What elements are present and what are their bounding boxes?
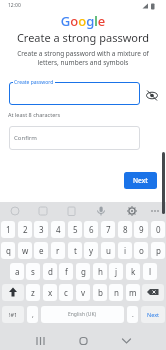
button[interactable]: 1 bbox=[1, 221, 15, 238]
staticText: b bbox=[98, 287, 103, 298]
staticText: Next bbox=[147, 311, 160, 318]
staticText: 4 bbox=[56, 224, 61, 235]
button[interactable]: o bbox=[134, 242, 148, 259]
button[interactable]: 7 bbox=[101, 221, 115, 238]
staticText: 0 bbox=[156, 224, 161, 235]
button[interactable]: r bbox=[51, 242, 65, 259]
button[interactable] bbox=[2, 284, 24, 301]
staticText: 3 bbox=[39, 224, 44, 235]
staticText: k bbox=[131, 266, 136, 277]
button[interactable]: 6 bbox=[84, 221, 98, 238]
button[interactable]: Next bbox=[124, 172, 157, 189]
button[interactable]: h bbox=[93, 263, 107, 280]
staticText: 7 bbox=[106, 224, 111, 235]
staticText: r bbox=[56, 245, 60, 256]
button[interactable]: e bbox=[34, 242, 48, 259]
staticText: o bbox=[139, 245, 144, 256]
button[interactable]: a bbox=[10, 263, 24, 280]
staticText: . bbox=[132, 310, 134, 319]
button[interactable]: s bbox=[26, 263, 40, 280]
button[interactable]: t bbox=[68, 242, 82, 259]
staticText: v bbox=[81, 287, 86, 298]
button[interactable]: w bbox=[18, 242, 32, 259]
staticText: m bbox=[129, 287, 137, 298]
button[interactable]: Next bbox=[141, 306, 165, 323]
staticText: English (UK) bbox=[68, 311, 97, 318]
staticText: g bbox=[81, 266, 86, 277]
button[interactable]: English (UK) bbox=[41, 306, 124, 323]
button[interactable]: q bbox=[1, 242, 15, 259]
staticText: , bbox=[32, 310, 34, 319]
button[interactable]: p bbox=[151, 242, 165, 259]
button[interactable]: 4 bbox=[51, 221, 65, 238]
button[interactable] bbox=[142, 284, 164, 301]
button[interactable]: , bbox=[27, 306, 38, 323]
staticText: 9 bbox=[139, 224, 144, 235]
staticText: !#1 bbox=[9, 311, 18, 318]
staticText: n bbox=[114, 287, 119, 298]
button[interactable]: x bbox=[43, 284, 57, 301]
button[interactable] bbox=[145, 89, 159, 102]
button[interactable]: f bbox=[59, 263, 73, 280]
button[interactable]: i bbox=[118, 242, 132, 259]
staticText: p bbox=[156, 245, 161, 256]
button[interactable]: j bbox=[109, 263, 123, 280]
staticText: 8 bbox=[123, 224, 128, 235]
staticText: q bbox=[6, 245, 11, 256]
staticText: 12:00 bbox=[8, 2, 21, 9]
button[interactable]: g bbox=[76, 263, 90, 280]
staticText: y bbox=[89, 245, 94, 256]
button[interactable]: Confirm bbox=[9, 126, 140, 150]
staticText: z bbox=[31, 287, 35, 298]
button[interactable]: k bbox=[126, 263, 140, 280]
button[interactable]: 3 bbox=[34, 221, 48, 238]
button[interactable]: b bbox=[93, 284, 107, 301]
staticText: x bbox=[48, 287, 53, 298]
button[interactable]: 5 bbox=[68, 221, 82, 238]
button[interactable]: 9 bbox=[134, 221, 148, 238]
staticText: Confirm bbox=[14, 134, 37, 142]
staticText: 1 bbox=[6, 224, 11, 235]
button[interactable]: y bbox=[84, 242, 98, 259]
button[interactable]: . bbox=[127, 306, 138, 323]
button[interactable]: m bbox=[126, 284, 140, 301]
button[interactable]: l bbox=[143, 263, 157, 280]
staticText: a bbox=[15, 266, 20, 277]
staticText: c bbox=[64, 287, 68, 298]
staticText: j bbox=[115, 266, 118, 277]
button[interactable] bbox=[9, 82, 140, 105]
staticText: d bbox=[48, 266, 53, 277]
staticText: Create a strong password bbox=[0, 30, 166, 45]
button[interactable]: 8 bbox=[118, 221, 132, 238]
staticText: Create password bbox=[14, 79, 54, 86]
staticText: t bbox=[74, 245, 77, 256]
staticText: Next bbox=[133, 176, 148, 185]
staticText: w bbox=[22, 245, 29, 256]
button[interactable]: 0 bbox=[151, 221, 165, 238]
staticText: f bbox=[65, 266, 68, 277]
button[interactable]: 2 bbox=[18, 221, 32, 238]
button[interactable]: u bbox=[101, 242, 115, 259]
staticText: u bbox=[106, 245, 111, 256]
button[interactable]: !#1 bbox=[2, 306, 24, 323]
staticText: 6 bbox=[89, 224, 94, 235]
button[interactable]: z bbox=[26, 284, 40, 301]
button[interactable]: v bbox=[76, 284, 90, 301]
staticText: i bbox=[124, 245, 127, 256]
staticText: At least 8 characters bbox=[8, 111, 61, 118]
staticText: 5 bbox=[73, 224, 78, 235]
staticText: e bbox=[39, 245, 44, 256]
staticText: 2 bbox=[23, 224, 28, 235]
staticText: Create a strong password with a mixture … bbox=[0, 49, 166, 67]
button[interactable]: c bbox=[59, 284, 73, 301]
button[interactable]: n bbox=[109, 284, 123, 301]
staticText: Google bbox=[0, 12, 166, 30]
staticText: s bbox=[31, 266, 35, 277]
staticText: l bbox=[149, 266, 152, 277]
staticText: h bbox=[98, 266, 103, 277]
button[interactable]: d bbox=[43, 263, 57, 280]
